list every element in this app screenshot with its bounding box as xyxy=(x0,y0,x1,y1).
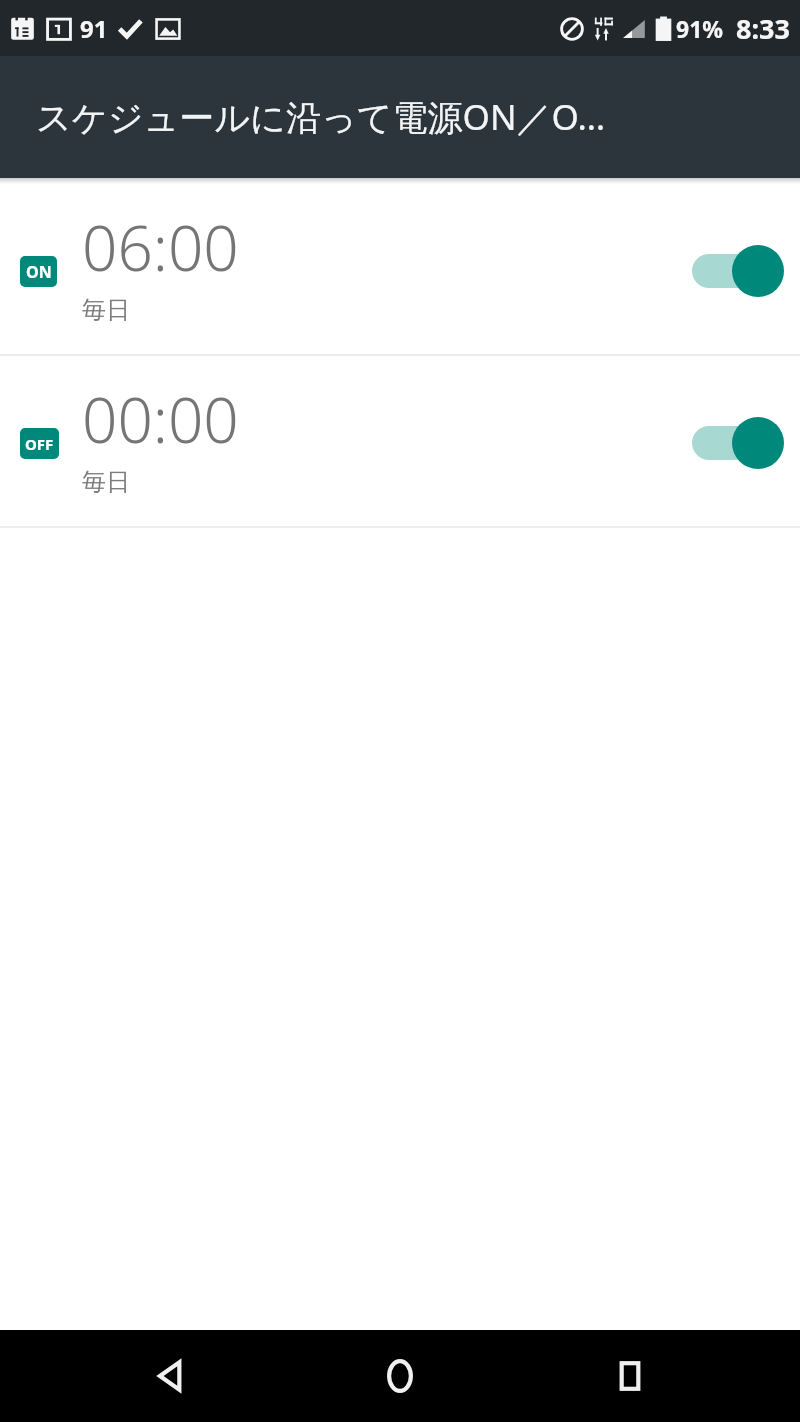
staticText: 毎日 xyxy=(82,467,130,497)
staticText: 91% xyxy=(676,13,724,44)
staticText: 毎日 xyxy=(82,295,130,325)
button[interactable]: Recent apps xyxy=(570,1330,690,1422)
staticText: 00:00 xyxy=(82,377,239,461)
staticText: ON xyxy=(26,261,52,283)
staticText: スケジュールに沿って電源ON／O… xyxy=(36,93,606,141)
button[interactable]: ON xyxy=(0,184,800,354)
button[interactable]: Toggle alarm xyxy=(686,413,782,473)
staticText: 06:00 xyxy=(82,205,239,289)
button[interactable]: Home xyxy=(340,1330,460,1422)
staticText: OFF xyxy=(25,434,54,454)
staticText: 8:33 xyxy=(736,10,790,47)
staticText: 91 xyxy=(80,12,108,45)
button[interactable]: Toggle alarm xyxy=(686,241,782,301)
button[interactable]: Back xyxy=(110,1330,230,1422)
button[interactable]: OFF xyxy=(0,356,800,526)
